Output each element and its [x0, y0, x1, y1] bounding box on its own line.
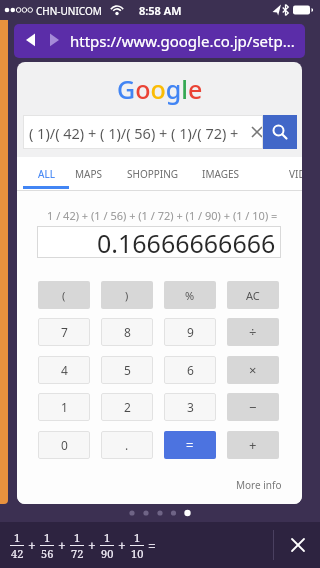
button[interactable]: 9 — [164, 318, 216, 346]
button[interactable]: ÷ — [227, 318, 279, 346]
button[interactable]: MAPS — [17, 157, 44, 171]
staticText: 1 — [14, 530, 21, 545]
staticText: 1 — [61, 399, 68, 415]
staticText: + — [88, 536, 96, 555]
button[interactable]: = — [164, 431, 216, 459]
staticText: 8 — [124, 324, 131, 340]
button[interactable]: 0 — [38, 431, 90, 459]
staticText: 1 — [74, 530, 81, 545]
button[interactable]: × — [227, 356, 279, 384]
button[interactable]: IMAGES — [17, 157, 54, 171]
staticText: = — [148, 536, 156, 555]
staticText: + — [118, 536, 126, 555]
button[interactable]: 4 — [38, 356, 90, 384]
button[interactable]: 7 — [38, 318, 90, 346]
staticText: 1 — [44, 530, 51, 545]
staticText: + — [58, 536, 66, 555]
staticText: CHN-UNICOM — [36, 4, 102, 18]
button[interactable]: SHOPPING — [17, 157, 69, 171]
staticText: AC — [246, 288, 260, 303]
button[interactable]: 1 — [38, 393, 90, 421]
staticText: 0 — [61, 437, 68, 453]
staticText: 42 — [11, 546, 24, 561]
staticText: Google — [117, 72, 203, 106]
staticText: https://www.google.co.jp/setp... — [70, 31, 295, 51]
button[interactable] — [263, 115, 297, 149]
button[interactable]: % — [164, 281, 216, 309]
staticText: 5 — [124, 362, 131, 378]
button[interactable] — [252, 127, 262, 137]
button[interactable]: − — [227, 393, 279, 421]
staticText: 4 — [61, 362, 68, 378]
button[interactable]: VIDEOS — [17, 157, 53, 171]
staticText: − — [249, 398, 257, 416]
staticText: 1 / 42) + (1 / 56) + (1 / 72) + (1 / 90)… — [47, 208, 278, 223]
button[interactable] — [284, 531, 312, 559]
button[interactable]: 3 — [164, 393, 216, 421]
staticText: 8:58 AM — [139, 3, 182, 18]
button[interactable]: 5 — [101, 356, 153, 384]
button[interactable]: More info — [236, 478, 282, 492]
button[interactable]: ) — [101, 281, 153, 309]
staticText: 10 — [131, 546, 144, 561]
staticText: 6 — [187, 362, 194, 378]
staticText: ( — [62, 288, 66, 303]
staticText: ) — [125, 288, 129, 303]
button[interactable]: ( — [38, 281, 90, 309]
button[interactable]: https://www.google.co.jp/setp... — [14, 24, 305, 58]
staticText: + — [28, 536, 36, 555]
staticText: 3 — [187, 399, 194, 415]
staticText: ÷ — [249, 323, 257, 341]
staticText: 0.16666666666 — [97, 226, 276, 258]
button[interactable]: 6 — [164, 356, 216, 384]
staticText: × — [249, 361, 257, 379]
staticText: 7 — [61, 324, 68, 340]
staticText: ( 1)/( 42) + ( 1)/( 56) + ( 1)/( 72) + — [29, 123, 243, 143]
staticText: 90 — [101, 546, 114, 561]
staticText: 1 — [104, 530, 111, 545]
staticText: 72 — [71, 546, 84, 561]
staticText: % — [185, 288, 195, 303]
staticText: 9 — [187, 324, 194, 340]
button[interactable]: 2 — [101, 393, 153, 421]
button[interactable]: 8 — [101, 318, 153, 346]
button[interactable]: AC — [227, 281, 279, 309]
staticText: = — [186, 436, 194, 454]
staticText: 1 — [134, 530, 141, 545]
staticText: 56 — [41, 546, 54, 561]
staticText: . — [125, 437, 129, 453]
staticText: 2 — [124, 399, 131, 415]
button[interactable]: . — [101, 431, 153, 459]
button[interactable]: + — [227, 431, 279, 459]
staticText: + — [249, 436, 257, 454]
